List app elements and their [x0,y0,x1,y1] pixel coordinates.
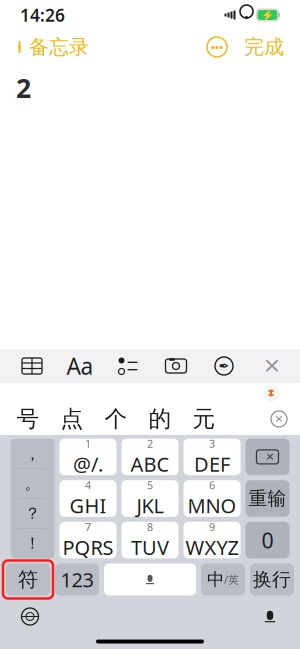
button[interactable]: 重输 [245,480,289,517]
staticText: ••• [211,40,223,54]
button[interactable]: ， [10,439,54,468]
staticText: 7 [85,520,91,534]
button[interactable]: 中 [201,563,245,595]
button[interactable]: 表格 [12,349,52,383]
staticText: 2 [16,70,31,105]
button[interactable]: 的 [138,403,182,435]
button[interactable]: 6 [183,480,240,517]
button[interactable]: 9 [183,522,240,558]
staticText: 5 [147,478,153,492]
button[interactable]: 标记 [204,349,244,383]
button[interactable]: 0 [245,522,289,558]
button[interactable]: 元 [182,403,226,435]
button[interactable]: 点 [50,403,94,435]
staticText: 完成 [244,35,284,59]
button[interactable]: 符 [6,563,50,595]
staticText: JKL [136,492,163,519]
staticText: PQRS [62,534,113,560]
staticText: ✕ [263,354,281,378]
staticText: 符 [18,567,38,592]
staticText: ！ [24,533,40,553]
staticText: 备忘录 [29,35,89,59]
button[interactable]: 检查表 [108,349,148,383]
staticText: 号 [16,405,39,433]
button[interactable]: 格式 [60,349,100,383]
button[interactable]: 完成 [234,29,294,65]
staticText: 中 [207,569,224,590]
button[interactable]: 7 [59,522,116,558]
staticText: 重输 [248,487,286,510]
staticText: ⚡ [261,9,274,21]
staticText: 。 [24,474,40,493]
button[interactable]: 1 [59,439,116,475]
button[interactable]: 听写 [250,601,290,631]
staticText: 6 [209,478,215,492]
staticText: 个 [104,405,127,433]
staticText: 3 [209,436,215,451]
button[interactable]: 5 [121,480,178,517]
button[interactable]: 4 [59,480,116,517]
staticText: 的 [148,405,171,433]
staticText: ABC [130,451,169,477]
button[interactable]: 换行 [250,563,294,595]
button[interactable]: 更多 [200,32,234,62]
button[interactable]: 2 [121,439,178,475]
staticText: ✒ [218,358,229,373]
staticText: 123 [60,566,93,593]
staticText: 1 [85,436,91,451]
staticText: ， [24,444,40,464]
staticText: 0 [261,526,273,554]
staticText: @/. [73,451,103,477]
staticText: DEF [194,451,230,477]
button[interactable]: 个 [94,403,138,435]
staticText: ✕ [274,413,283,425]
staticText: MNO [187,492,236,519]
staticText: 2 [147,436,153,451]
staticText: 8 [147,520,153,534]
button[interactable]: 号 [6,403,50,435]
staticText: 9 [209,520,215,534]
staticText: ✕ [265,451,274,463]
button[interactable]: 关闭 [252,349,292,383]
staticText: WXYZ [185,534,238,560]
button[interactable]: 8 [121,522,178,558]
staticText: TUV [131,534,169,560]
button[interactable]: 相机 [156,349,196,383]
button[interactable]: 清除 [262,403,296,435]
button[interactable]: 切换键盘 [10,601,50,631]
button[interactable]: 3 [183,439,240,475]
staticText: 点 [60,405,83,433]
staticText: 元 [192,405,215,433]
staticText: Aa [66,351,93,381]
staticText: ？ [24,504,40,523]
button[interactable]: 删除 [245,439,289,475]
staticText: 换行 [253,568,291,591]
staticText: 4 [85,478,91,492]
button[interactable]: ？ [10,499,54,528]
button[interactable]: 123 [55,563,99,595]
button[interactable]: 空格 [104,563,196,595]
button[interactable]: 备忘录 [6,29,99,65]
button[interactable]: 贴纸 [258,383,284,403]
staticText: /英 [224,572,239,587]
staticText: 14:26 [20,3,65,26]
staticText: GHI [69,492,106,519]
button[interactable]: ！ [10,529,54,558]
button[interactable]: 。 [10,469,54,498]
